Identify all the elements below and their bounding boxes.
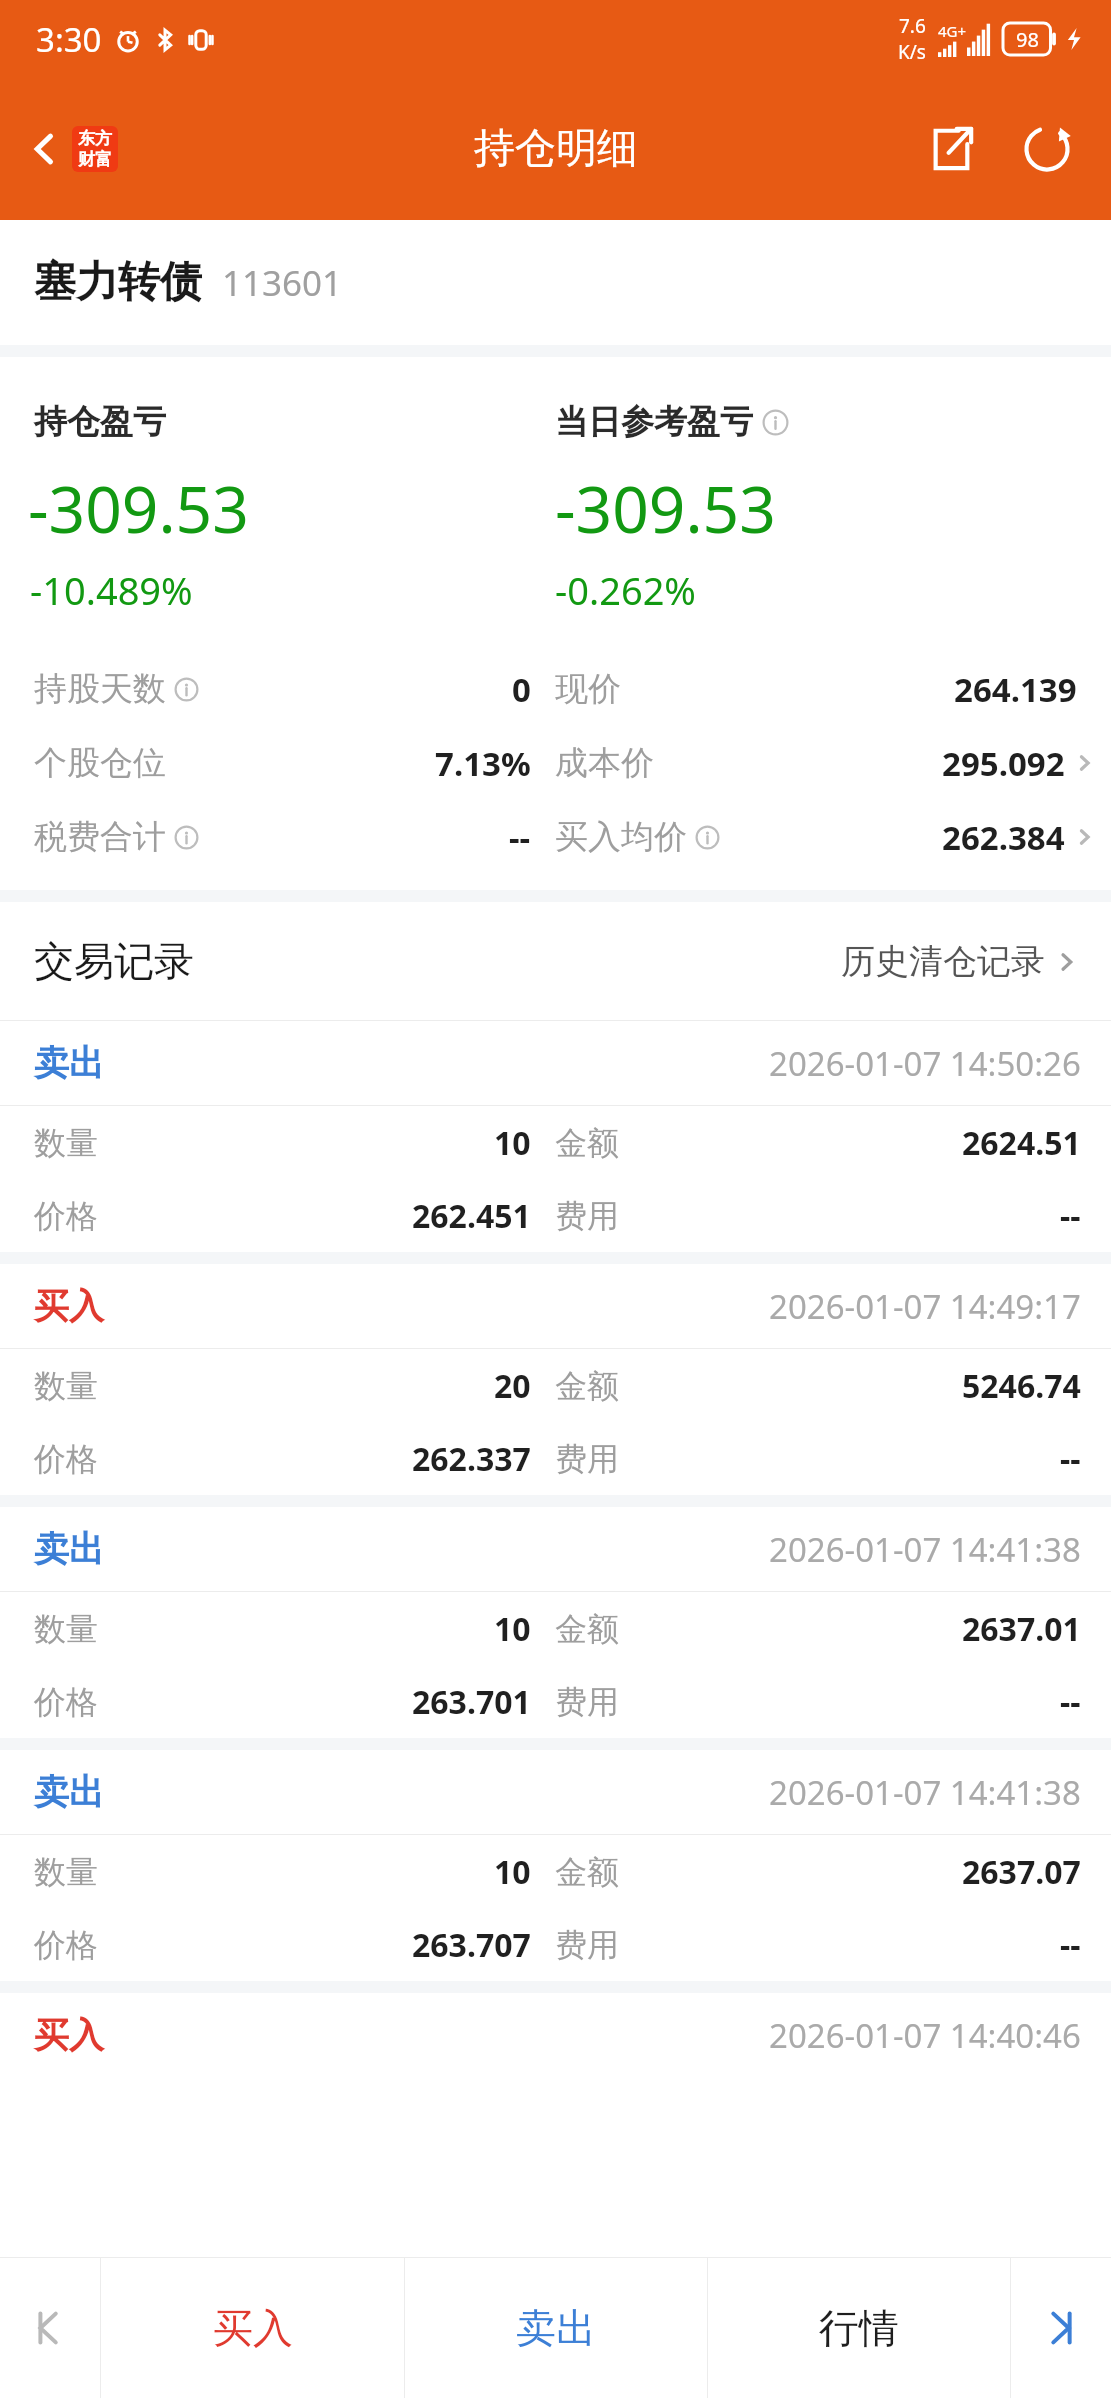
staticText: 金额 [555,1366,619,1406]
staticText: 交易记录 [34,936,194,986]
staticText: -- [1060,1680,1081,1724]
staticText: 东方 [78,128,112,149]
staticText: -- [1060,1923,1081,1967]
staticText: 买入 [213,2303,293,2353]
staticText: 当日参考盈亏 [555,401,753,443]
staticText: 现价 [555,668,621,710]
staticText: 价格 [34,1925,98,1965]
staticText: 行情 [819,2303,899,2353]
staticText: -309.53 [28,465,249,552]
staticText: 2026-01-07 14:50:26 [769,1041,1081,1086]
staticText: 成本价 [555,742,654,784]
staticText: 买入 [34,2013,104,2057]
staticText: -0.262% [555,564,696,616]
button[interactable]: 历史清仓记录 [833,932,1089,991]
staticText: 价格 [34,1439,98,1479]
staticText: 262.337 [412,1437,531,1481]
staticText: 2026-01-07 14:40:46 [769,2013,1081,2058]
staticText: 2026-01-07 14:41:38 [769,1527,1081,1572]
staticText: 0 [512,667,531,712]
staticText: 持仓盈亏 [34,401,166,443]
staticText: 2026-01-07 14:41:38 [769,1770,1081,1815]
staticText: 费用 [555,1196,619,1236]
staticText: 264.139 [954,667,1077,712]
staticText: 20 [494,1364,531,1408]
staticText: 2637.01 [962,1607,1081,1651]
staticText: 295.092 [942,741,1065,786]
staticText: 卖出 [34,1527,104,1571]
staticText: 2637.07 [962,1850,1081,1894]
staticText: 财富 [78,149,112,170]
staticText: 历史清仓记录 [841,940,1045,983]
staticText: 金额 [555,1852,619,1892]
staticText: -- [1060,1437,1081,1481]
other: Back [22,126,68,172]
staticText: 5246.74 [962,1364,1081,1408]
staticText: 7.13% [435,741,531,786]
staticText: 个股仓位 [34,742,166,784]
staticText: 卖出 [34,1770,104,1814]
staticText: 98 [1016,26,1039,53]
button[interactable]: Next [1011,2258,1111,2398]
staticText: 10 [494,1850,531,1894]
button[interactable]: Refresh [1009,111,1085,187]
staticText: 113601 [222,259,343,307]
staticText: 3:30 [36,17,102,62]
staticText: 持股天数 [34,668,166,710]
staticText: 卖出 [34,1041,104,1085]
staticText: 持仓明细 [474,123,638,175]
button[interactable]: 买入 [0,1993,1111,2257]
button[interactable]: 买入 [101,2258,404,2398]
staticText: 卖出 [516,2303,596,2353]
staticText: 262.451 [412,1194,531,1238]
staticText: -309.53 [555,465,776,552]
staticText: 金额 [555,1609,619,1649]
button[interactable]: 买入 [0,1264,1111,1495]
staticText: 买入均价 [555,816,687,858]
button[interactable]: Previous [0,2258,100,2398]
staticText: 263.707 [412,1923,531,1967]
staticText: 4G+ [938,21,967,41]
staticText: 塞力转债 [34,256,202,309]
button[interactable]: 买入均价 [555,800,1097,874]
staticText: 费用 [555,1925,619,1965]
staticText: 买入 [34,1284,104,1328]
staticText: 2624.51 [962,1121,1081,1165]
staticText: 数量 [34,1123,98,1163]
staticText: -- [509,815,531,860]
button[interactable]: 卖出 [0,1021,1111,1252]
staticText: -- [1060,1194,1081,1238]
staticText: 金额 [555,1123,619,1163]
button[interactable]: 卖出 [0,1750,1111,1981]
button[interactable]: 卖出 [405,2258,707,2398]
button[interactable]: Share [915,113,987,185]
staticText: 263.701 [412,1680,531,1724]
button[interactable]: 行情 [708,2258,1010,2398]
button[interactable]: Back [14,118,126,180]
button[interactable]: 卖出 [0,1507,1111,1738]
button[interactable]: 成本价 [555,726,1097,800]
staticText: 262.384 [942,815,1065,860]
staticText: K/s [898,39,926,65]
staticText: 2026-01-07 14:49:17 [769,1284,1081,1329]
staticText: 价格 [34,1196,98,1236]
staticText: 7.6 [899,13,926,39]
staticText: 税费合计 [34,816,166,858]
staticText: 费用 [555,1439,619,1479]
button[interactable]: 塞力转债 [0,220,1111,345]
staticText: 10 [494,1607,531,1651]
staticText: 价格 [34,1682,98,1722]
staticText: 10 [494,1121,531,1165]
staticText: 数量 [34,1852,98,1892]
staticText: -10.489% [30,564,193,616]
staticText: 数量 [34,1609,98,1649]
staticText: 费用 [555,1682,619,1722]
staticText: 数量 [34,1366,98,1406]
